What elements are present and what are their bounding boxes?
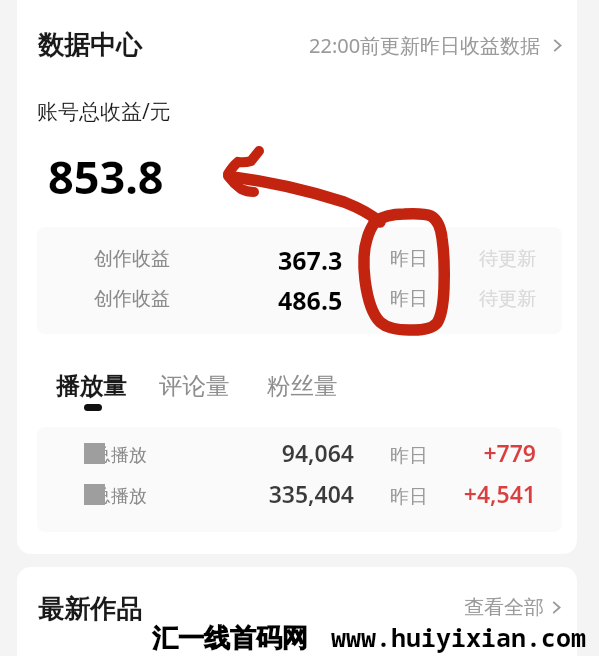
staticText: www.huiyixian.com: [331, 620, 587, 654]
staticText: 创作收益: [94, 247, 170, 271]
staticText: 账号总收益/元: [37, 97, 171, 126]
staticText: 评论量: [159, 371, 230, 401]
staticText: 335,404: [207, 478, 354, 509]
button[interactable]: 评论量: [159, 371, 230, 404]
staticText: 昨日: [390, 485, 428, 509]
staticText: 数据中心: [38, 29, 142, 62]
staticText: 昨日: [390, 287, 428, 311]
staticText: 486.5: [278, 283, 343, 317]
staticText: 总播放: [93, 485, 147, 508]
staticText: 昨日: [390, 247, 428, 271]
staticText: 昨日: [390, 444, 428, 468]
staticText: +779: [417, 437, 536, 468]
button[interactable]: 22:00前更新昨日收益数据: [309, 32, 566, 59]
button[interactable]: 粉丝量: [267, 371, 338, 404]
staticText: 待更新: [479, 247, 536, 271]
staticText: 播放量: [56, 371, 127, 401]
staticText: 粉丝量: [267, 371, 338, 401]
staticText: 94,064: [207, 437, 354, 468]
button[interactable]: 查看全部: [464, 595, 565, 620]
staticText: 367.3: [278, 243, 343, 277]
staticText: 22:00前更新昨日收益数据: [309, 32, 541, 59]
staticText: 总播放: [93, 444, 147, 467]
staticText: 创作收益: [94, 287, 170, 311]
staticText: +4,541: [417, 478, 536, 509]
button[interactable]: 播放量: [56, 371, 127, 411]
staticText: 待更新: [479, 287, 536, 311]
staticText: 汇一线首码网: [152, 622, 308, 655]
staticText: 查看全部: [464, 595, 544, 620]
staticText: 853.8: [48, 146, 164, 207]
staticText: 最新作品: [38, 593, 142, 626]
